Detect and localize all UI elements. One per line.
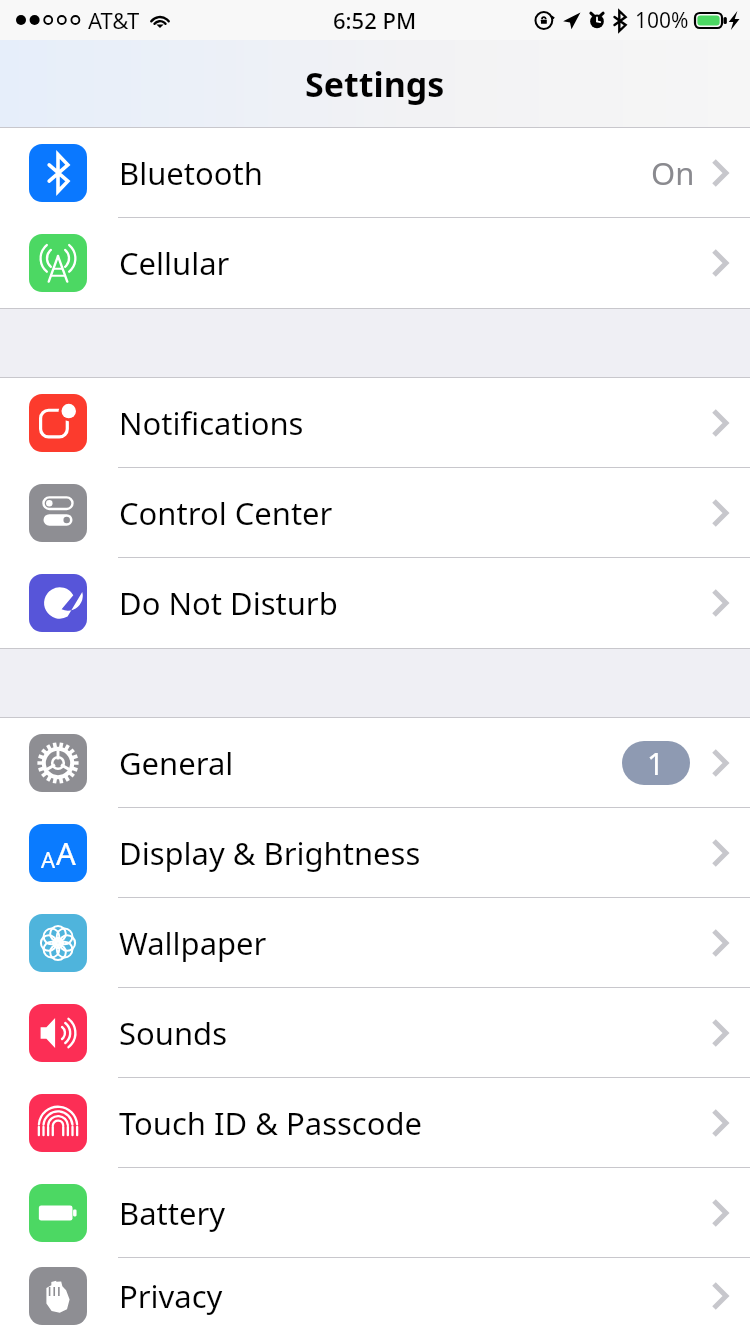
- staticText: Wallpaper: [119, 922, 267, 964]
- staticText: Cellular: [119, 242, 230, 284]
- staticText: Settings: [305, 61, 445, 107]
- other: Touch ID & Passcode: [712, 1109, 728, 1137]
- staticText: 6:52 PM: [333, 5, 417, 35]
- staticText: Touch ID & Passcode: [119, 1102, 423, 1144]
- button[interactable]: Bluetooth: [0, 128, 750, 218]
- staticText: A: [41, 844, 56, 874]
- staticText: Sounds: [119, 1012, 228, 1054]
- other: Privacy: [712, 1282, 728, 1310]
- staticText: Control Center: [119, 492, 333, 534]
- staticText: AT&T: [88, 5, 140, 35]
- other: Battery: [712, 1199, 728, 1227]
- other: Sounds: [712, 1019, 728, 1047]
- other: General: [712, 749, 728, 777]
- other: Control Center: [712, 499, 728, 527]
- button[interactable]: Privacy: [0, 1258, 750, 1334]
- staticText: Bluetooth: [119, 152, 263, 194]
- staticText: Display & Brightness: [119, 832, 421, 874]
- button[interactable]: Cellular: [0, 218, 750, 308]
- staticText: 1: [647, 743, 665, 784]
- staticText: Do Not Disturb: [119, 582, 338, 624]
- staticText: 100%: [635, 6, 689, 35]
- staticText: General: [119, 742, 234, 784]
- button[interactable]: A: [0, 808, 750, 898]
- other: Notifications: [712, 409, 728, 437]
- other: Bluetooth: [712, 159, 728, 187]
- button[interactable]: Control Center: [0, 468, 750, 558]
- other: Display & Brightness: [712, 839, 728, 867]
- button[interactable]: Notifications: [0, 378, 750, 468]
- staticText: On: [651, 152, 695, 194]
- staticText: Battery: [119, 1192, 226, 1234]
- button[interactable]: Sounds: [0, 988, 750, 1078]
- other: Cellular: [712, 249, 728, 277]
- staticText: Privacy: [119, 1275, 223, 1317]
- button[interactable]: Touch ID & Passcode: [0, 1078, 750, 1168]
- button[interactable]: General: [0, 718, 750, 808]
- staticText: A: [56, 832, 76, 874]
- staticText: Notifications: [119, 402, 304, 444]
- button[interactable]: Wallpaper: [0, 898, 750, 988]
- other: Wallpaper: [712, 929, 728, 957]
- other: Do Not Disturb: [712, 589, 728, 617]
- button[interactable]: Do Not Disturb: [0, 558, 750, 648]
- button[interactable]: Battery: [0, 1168, 750, 1258]
